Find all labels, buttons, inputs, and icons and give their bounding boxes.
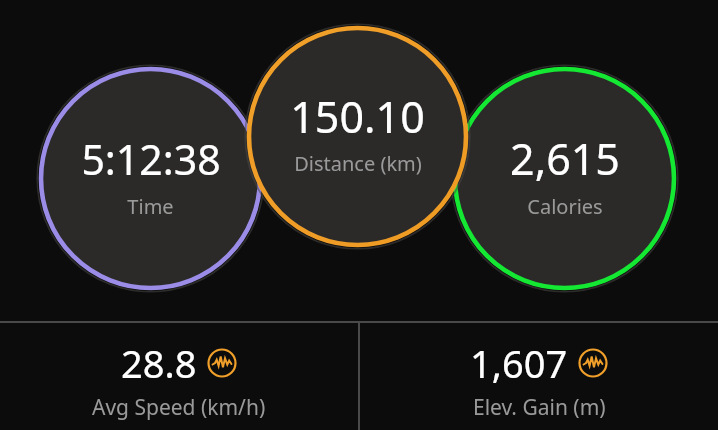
staticText: 28.8 [121,337,197,389]
other: Activity detail [207,348,237,378]
button[interactable]: 5:12:38 [36,64,265,293]
button[interactable]: 150.10 [244,23,471,250]
staticText: Distance (km) [294,150,422,177]
staticText: Calories [527,193,603,220]
other: Activity detail [578,348,608,378]
staticText: 1,607 [470,337,568,389]
button[interactable]: 1,607 [360,323,718,430]
staticText: Avg Speed (km/h) [92,393,266,422]
button[interactable]: 2,615 [450,64,679,293]
button[interactable]: 28.8 [0,323,358,430]
staticText: 5:12:38 [81,131,221,187]
staticText: 2,615 [510,129,620,188]
staticText: Time [127,193,174,220]
staticText: Elev. Gain (m) [473,393,606,422]
staticText: 150.10 [290,87,425,146]
